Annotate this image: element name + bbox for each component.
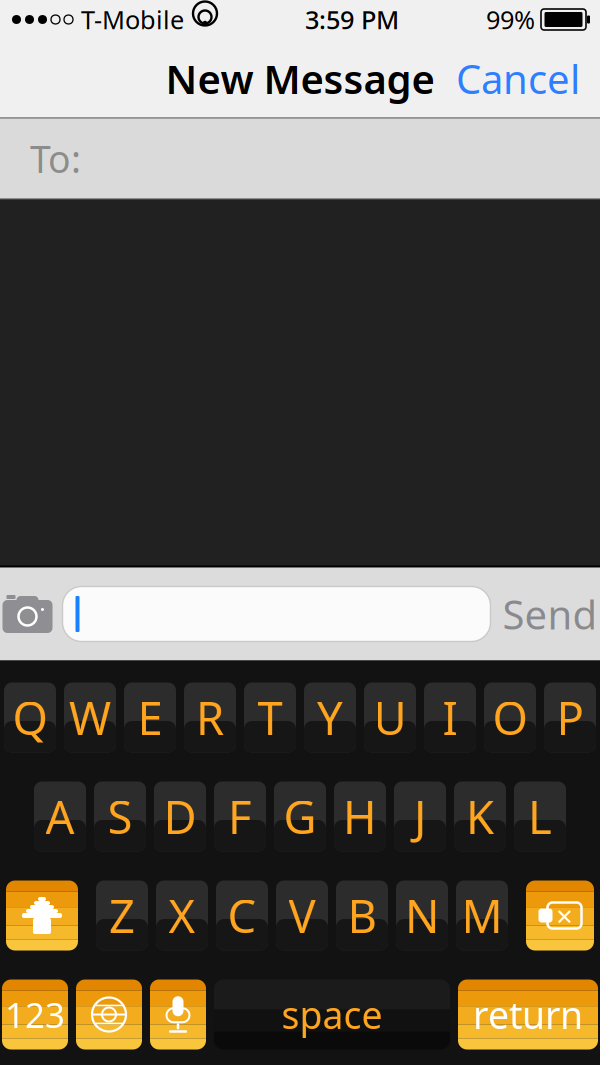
staticText: 3:59 PM: [305, 3, 399, 36]
button[interactable]: G: [274, 781, 326, 851]
button[interactable]: A: [34, 781, 86, 851]
button[interactable]: Shift: [6, 880, 78, 950]
staticText: M: [461, 885, 502, 946]
button[interactable]: space: [214, 979, 450, 1049]
staticText: S: [107, 786, 132, 847]
button[interactable]: [62, 586, 490, 641]
button[interactable]: R: [184, 682, 236, 752]
button[interactable]: V: [276, 880, 328, 950]
button[interactable]: 123: [2, 979, 68, 1049]
button[interactable]: Y: [304, 682, 356, 752]
staticText: Q: [12, 687, 47, 748]
button[interactable]: Delete: [526, 880, 594, 950]
staticText: T: [257, 687, 282, 748]
staticText: A: [45, 786, 74, 847]
staticText: New Message: [165, 52, 434, 105]
staticText: 123: [5, 991, 65, 1037]
button[interactable]: C: [216, 880, 268, 950]
button[interactable]: D: [154, 781, 206, 851]
button[interactable]: K: [454, 781, 506, 851]
staticText: P: [556, 687, 583, 748]
staticText: L: [528, 786, 552, 847]
staticText: return: [473, 990, 583, 1039]
staticText: B: [347, 885, 376, 946]
staticText: space: [281, 990, 382, 1039]
button[interactable]: M: [456, 880, 508, 950]
staticText: F: [228, 786, 252, 847]
staticText: H: [343, 786, 377, 847]
button[interactable]: Send: [490, 587, 600, 640]
staticText: ×: [556, 896, 573, 935]
button[interactable]: X: [156, 880, 208, 950]
staticText: To:: [30, 134, 81, 183]
staticText: K: [466, 786, 494, 847]
staticText: Y: [317, 687, 343, 748]
button[interactable]: return: [458, 979, 598, 1049]
button[interactable]: Next keyboard: [76, 979, 142, 1049]
button[interactable]: E: [124, 682, 176, 752]
staticText: Cancel: [456, 52, 580, 105]
button[interactable]: N: [396, 880, 448, 950]
staticText: T-Mobile: [81, 3, 184, 36]
staticText: W: [69, 687, 111, 748]
button[interactable]: W: [64, 682, 116, 752]
staticText: V: [288, 885, 315, 946]
button[interactable]: P: [544, 682, 596, 752]
button[interactable]: S: [94, 781, 146, 851]
staticText: Z: [109, 885, 135, 946]
staticText: J: [414, 786, 426, 847]
button[interactable]: O: [484, 682, 536, 752]
staticText: D: [163, 786, 196, 847]
button[interactable]: Q: [4, 682, 56, 752]
button[interactable]: To:: [0, 118, 600, 198]
staticText: N: [405, 885, 439, 946]
button[interactable]: U: [364, 682, 416, 752]
staticText: G: [283, 786, 316, 847]
button[interactable]: Camera: [0, 594, 62, 634]
button[interactable]: Z: [96, 880, 148, 950]
button[interactable]: L: [514, 781, 566, 851]
staticText: E: [137, 687, 162, 748]
button[interactable]: F: [214, 781, 266, 851]
staticText: O: [492, 687, 527, 748]
staticText: Send: [502, 587, 597, 640]
button[interactable]: T: [244, 682, 296, 752]
staticText: U: [373, 687, 406, 748]
staticText: R: [196, 687, 224, 748]
staticText: 99%: [486, 3, 535, 36]
button[interactable]: J: [394, 781, 446, 851]
button[interactable]: Cancel: [442, 42, 594, 115]
staticText: I: [442, 687, 457, 748]
button[interactable]: I: [424, 682, 476, 752]
staticText: C: [227, 885, 256, 946]
button[interactable]: Dictation: [150, 979, 206, 1049]
button[interactable]: H: [334, 781, 386, 851]
button[interactable]: B: [336, 880, 388, 950]
staticText: X: [168, 885, 195, 946]
